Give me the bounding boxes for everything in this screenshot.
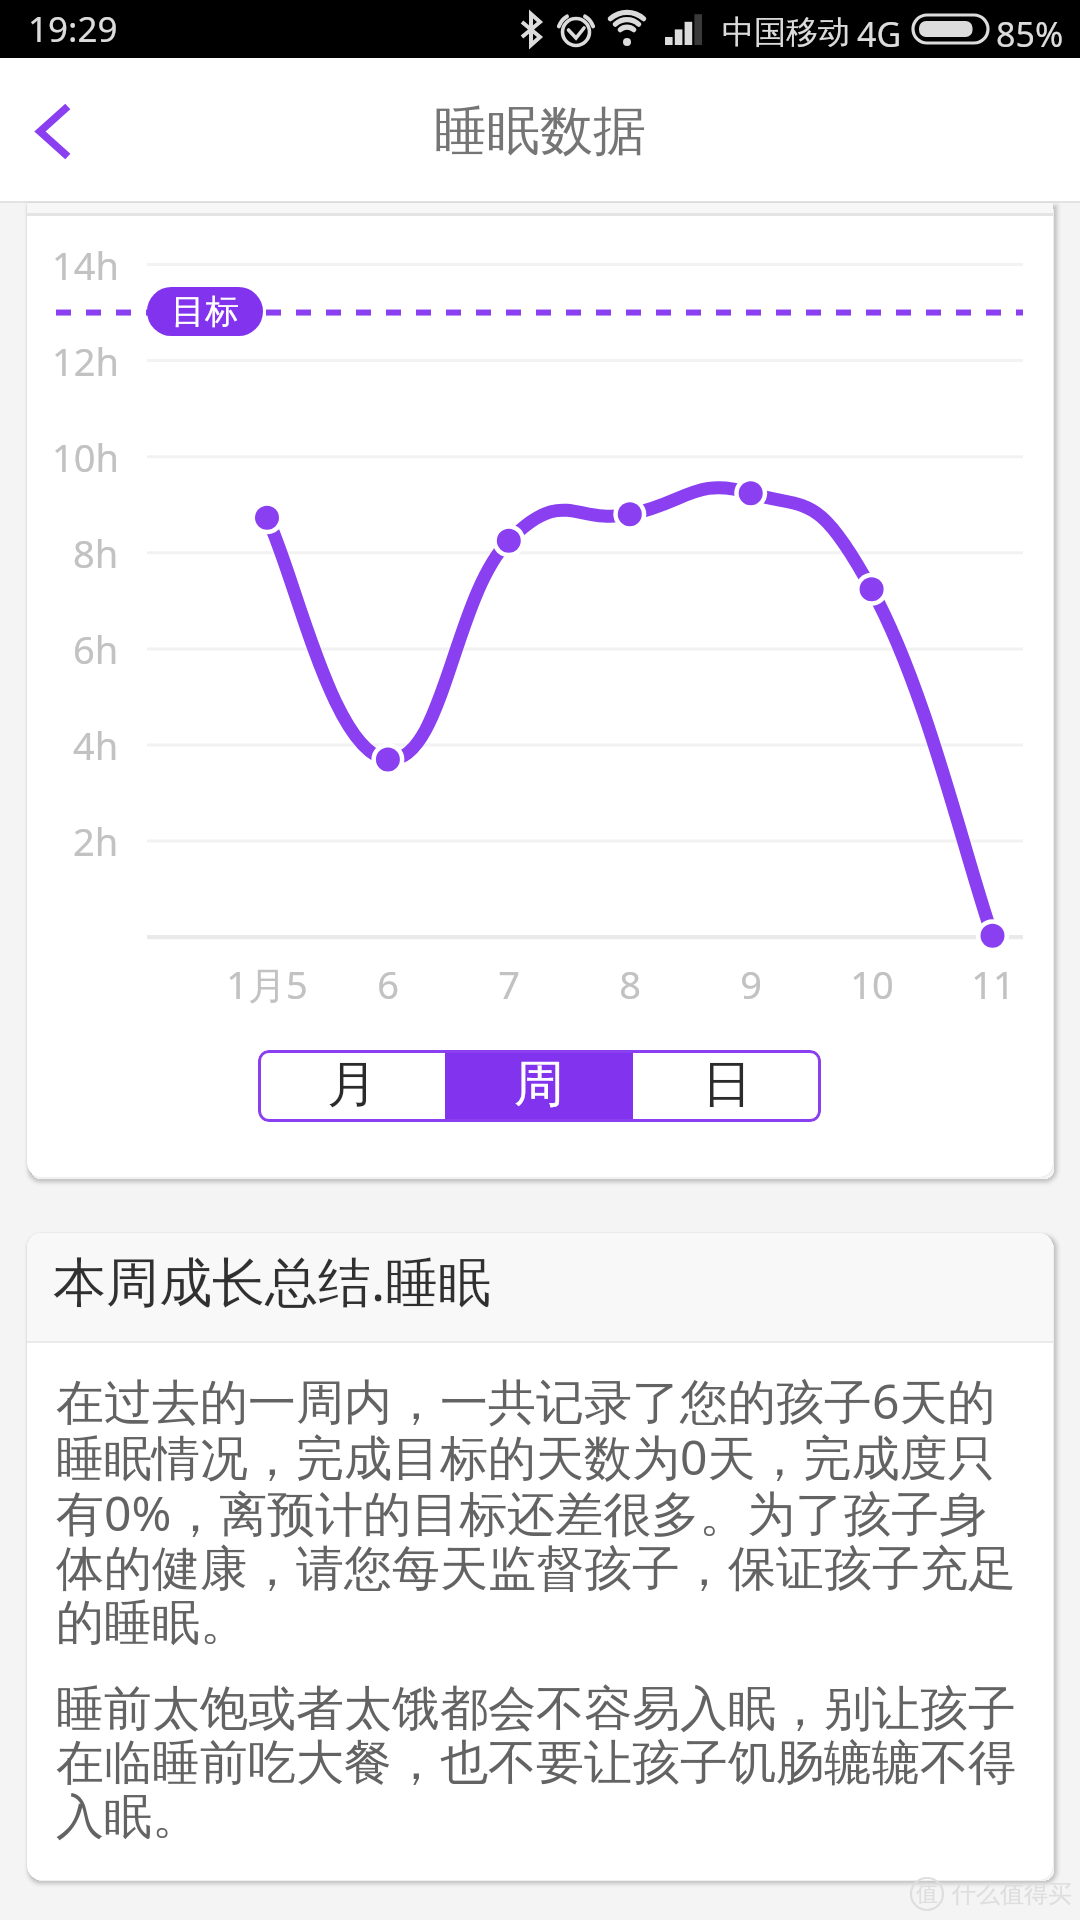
staticText: 11	[971, 958, 1015, 1010]
staticText: 睡前太饱或者太饿都会不容易入眠，别让孩子在临睡前吃大餐，也不要让孩子饥肠辘辘不得…	[56, 1679, 1024, 1847]
staticText: 月	[327, 1053, 377, 1116]
staticText: 4G	[857, 11, 902, 57]
staticText: 什么值得买	[952, 1879, 1072, 1909]
staticText: 在过去的一周内，一共记录了您的孩子6天的睡眠情况，完成目标的天数为0天，完成度只…	[56, 1368, 1024, 1653]
staticText: 10	[850, 958, 894, 1010]
staticText: 7	[498, 958, 520, 1010]
staticText: 值	[916, 1880, 938, 1908]
staticText: 本周成长总结.睡眠	[53, 1244, 492, 1316]
staticText: 2h	[73, 815, 119, 867]
staticText: 4h	[73, 719, 119, 771]
staticText: 中国移动	[722, 12, 850, 52]
staticText: 14h	[52, 239, 119, 291]
staticText: 周	[514, 1053, 564, 1116]
staticText: 1月5	[226, 958, 308, 1010]
button[interactable]: Back	[8, 86, 96, 174]
staticText: 目标	[171, 290, 239, 333]
staticText: 睡眠数据	[434, 98, 646, 165]
staticText: 6h	[73, 623, 119, 675]
staticText: 6	[377, 958, 399, 1010]
button[interactable]: 周	[445, 1050, 633, 1122]
staticText: 85%	[996, 11, 1064, 57]
staticText: 8	[619, 958, 641, 1010]
staticText: 19:29	[28, 5, 118, 53]
button[interactable]: 日	[633, 1050, 821, 1122]
button[interactable]: 月	[258, 1050, 445, 1122]
staticText: 12h	[52, 335, 119, 387]
staticText: 10h	[52, 431, 119, 483]
staticText: 日	[702, 1053, 752, 1116]
staticText: 9	[740, 958, 762, 1010]
staticText: 8h	[73, 527, 119, 579]
